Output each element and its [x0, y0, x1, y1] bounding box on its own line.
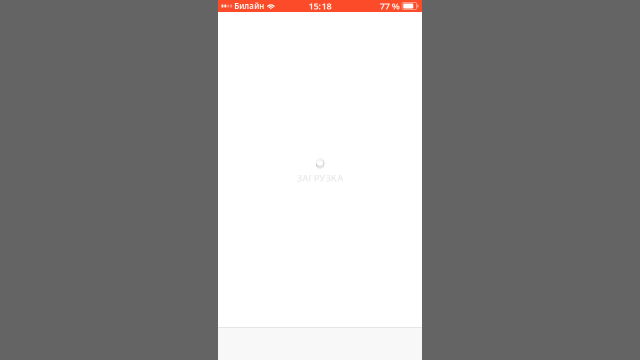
staticText: 15:18 [308, 0, 331, 12]
staticText: 77 % [380, 0, 400, 12]
staticText: Билайн [234, 1, 264, 11]
staticText: ЗАГРУЗКА [297, 172, 343, 184]
